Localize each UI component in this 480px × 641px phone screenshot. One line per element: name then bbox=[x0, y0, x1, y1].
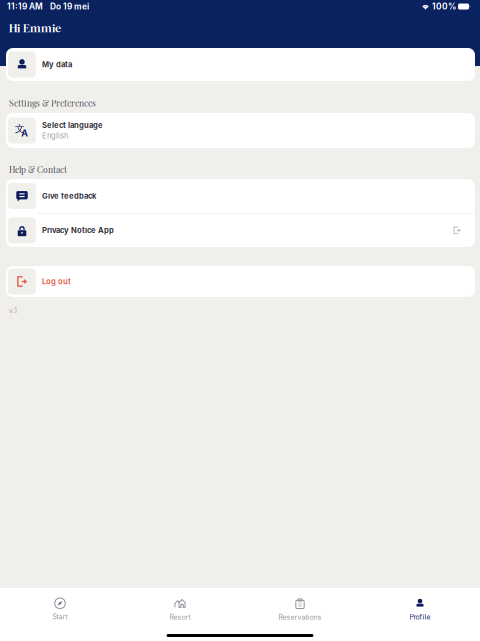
staticText: Settings & Preferences bbox=[9, 97, 96, 109]
button[interactable]: Reservations bbox=[240, 593, 360, 626]
staticText: Log out bbox=[42, 277, 71, 286]
staticText: Start bbox=[52, 613, 67, 621]
button[interactable]: Profile bbox=[360, 593, 480, 626]
button[interactable]: Privacy Notice App bbox=[6, 214, 475, 247]
staticText: 文 bbox=[15, 123, 25, 135]
staticText: Do 19 mei bbox=[50, 1, 89, 11]
staticText: Profile bbox=[409, 613, 430, 621]
button[interactable]: Give feedback bbox=[6, 179, 475, 213]
staticText: 11:19 AM bbox=[7, 1, 43, 11]
staticText: 100% bbox=[432, 1, 456, 11]
button[interactable]: Resort bbox=[120, 593, 240, 626]
staticText: Resort bbox=[169, 613, 190, 621]
staticText: Hi Emmie bbox=[9, 20, 61, 36]
staticText: A bbox=[21, 128, 28, 138]
staticText: Give feedback bbox=[42, 191, 96, 201]
button[interactable]: Log out bbox=[6, 266, 475, 297]
staticText: v.1 bbox=[9, 306, 17, 315]
button[interactable]: 文 bbox=[6, 113, 475, 148]
staticText: Privacy Notice App bbox=[42, 226, 114, 235]
staticText: Reservations bbox=[278, 613, 321, 621]
staticText: English bbox=[42, 131, 68, 140]
button[interactable]: Start bbox=[0, 593, 120, 626]
staticText: Help & Contact bbox=[9, 164, 67, 175]
staticText: Select language bbox=[42, 121, 103, 130]
staticText: My data bbox=[42, 60, 72, 69]
button[interactable]: My data bbox=[6, 48, 475, 81]
